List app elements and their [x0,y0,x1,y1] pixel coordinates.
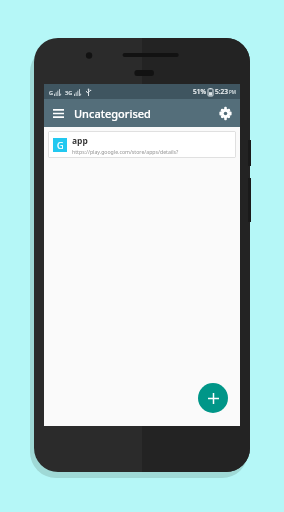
staticText: 5:23 [215,87,228,96]
staticText: PM [229,89,236,95]
button[interactable]: Open navigation menu [48,103,68,123]
staticText: G [49,89,53,96]
staticText: 3G [65,89,73,96]
button[interactable]: G [48,131,236,158]
staticText: Uncategorised [74,106,151,121]
staticText: G [57,139,64,151]
staticText: 51% [193,87,206,96]
button[interactable]: Settings [214,102,236,124]
staticText: https://play.google.com/store/apps/detai… [72,148,179,155]
staticText: , [60,89,62,96]
button[interactable]: Add link [198,383,228,413]
staticText: , [80,89,82,96]
staticText: app [72,135,88,147]
